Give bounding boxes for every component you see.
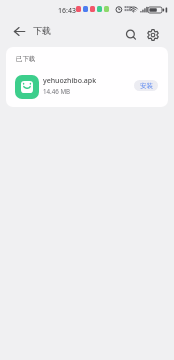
button[interactable]: Search [119, 23, 142, 46]
staticText: 已下载 [16, 55, 36, 63]
staticText: yehuozhibo.apk [43, 76, 97, 86]
button[interactable]: Settings [141, 23, 164, 46]
staticText: 下载 [33, 25, 51, 36]
staticText: 14.46 MB [43, 87, 71, 95]
button[interactable]: yehuozhibo.apk [6, 71, 168, 99]
staticText: 安装 [140, 82, 153, 90]
button[interactable]: Back [7, 19, 32, 44]
staticText: 16:43 [58, 6, 76, 16]
button[interactable]: 安装 [134, 80, 158, 91]
